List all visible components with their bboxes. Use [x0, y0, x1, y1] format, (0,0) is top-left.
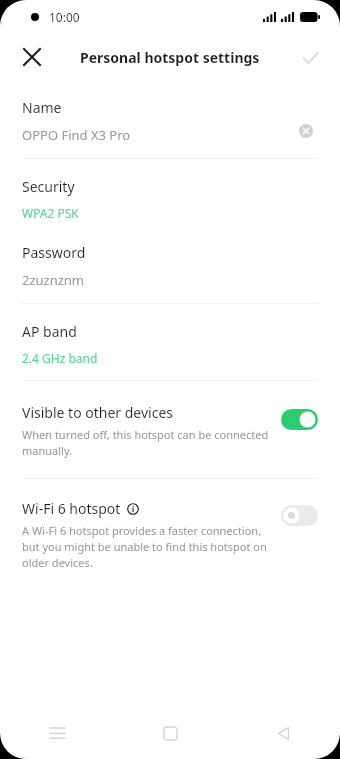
staticText: Security: [22, 177, 75, 196]
button[interactable]: Name: [0, 98, 340, 144]
staticText: Password: [22, 243, 86, 262]
button[interactable]: Back: [227, 707, 340, 759]
staticText: WPA2 PSK: [22, 205, 79, 221]
button[interactable]: Visible to other devices: [0, 395, 340, 466]
staticText: Visible to other devices: [22, 403, 174, 422]
staticText: AP band: [22, 322, 77, 341]
button[interactable]: Home: [114, 707, 227, 759]
staticText: Wi-Fi 6 hotspot: [22, 499, 121, 518]
button[interactable]: Security: [0, 177, 340, 221]
staticText: A Wi-Fi 6 hotspot provides a faster conn…: [22, 523, 269, 570]
staticText: 2.4 GHz band: [22, 350, 98, 366]
button[interactable]: Recent apps: [0, 707, 114, 759]
button[interactable]: Confirm: [292, 39, 328, 75]
staticText: 2zuznznm: [22, 271, 85, 289]
staticText: OPPO Find X3 Pro: [22, 126, 131, 144]
staticText: When turned off, this hotspot can be con…: [22, 427, 269, 458]
staticText: 10:00: [49, 9, 80, 25]
button[interactable]: Close: [14, 39, 50, 75]
button[interactable]: Wi-Fi 6 hotspot: [0, 491, 340, 578]
button[interactable]: Off: [281, 505, 318, 526]
staticText: Name: [22, 98, 62, 117]
button[interactable]: Clear name: [294, 119, 318, 143]
button[interactable]: Password: [0, 243, 340, 289]
button[interactable]: On: [281, 409, 318, 430]
staticText: Personal hotspot settings: [80, 48, 260, 67]
button[interactable]: AP band: [0, 322, 340, 366]
